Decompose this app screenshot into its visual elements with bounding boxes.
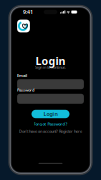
staticText: Don't have an account? Register here [19, 128, 82, 134]
staticText: Forgot Password? [33, 121, 67, 126]
staticText: Password [17, 87, 35, 93]
staticText: Login [35, 54, 65, 68]
button[interactable]: Login [31, 110, 69, 118]
button[interactable]: Don't have an account? Register here [19, 129, 82, 133]
staticText: Login [43, 110, 57, 118]
staticText: 9:41 [23, 8, 33, 16]
staticText: Email [17, 73, 27, 78]
button[interactable]: Forgot Password? [33, 122, 67, 126]
staticText: Sign in to continue. [35, 64, 66, 70]
